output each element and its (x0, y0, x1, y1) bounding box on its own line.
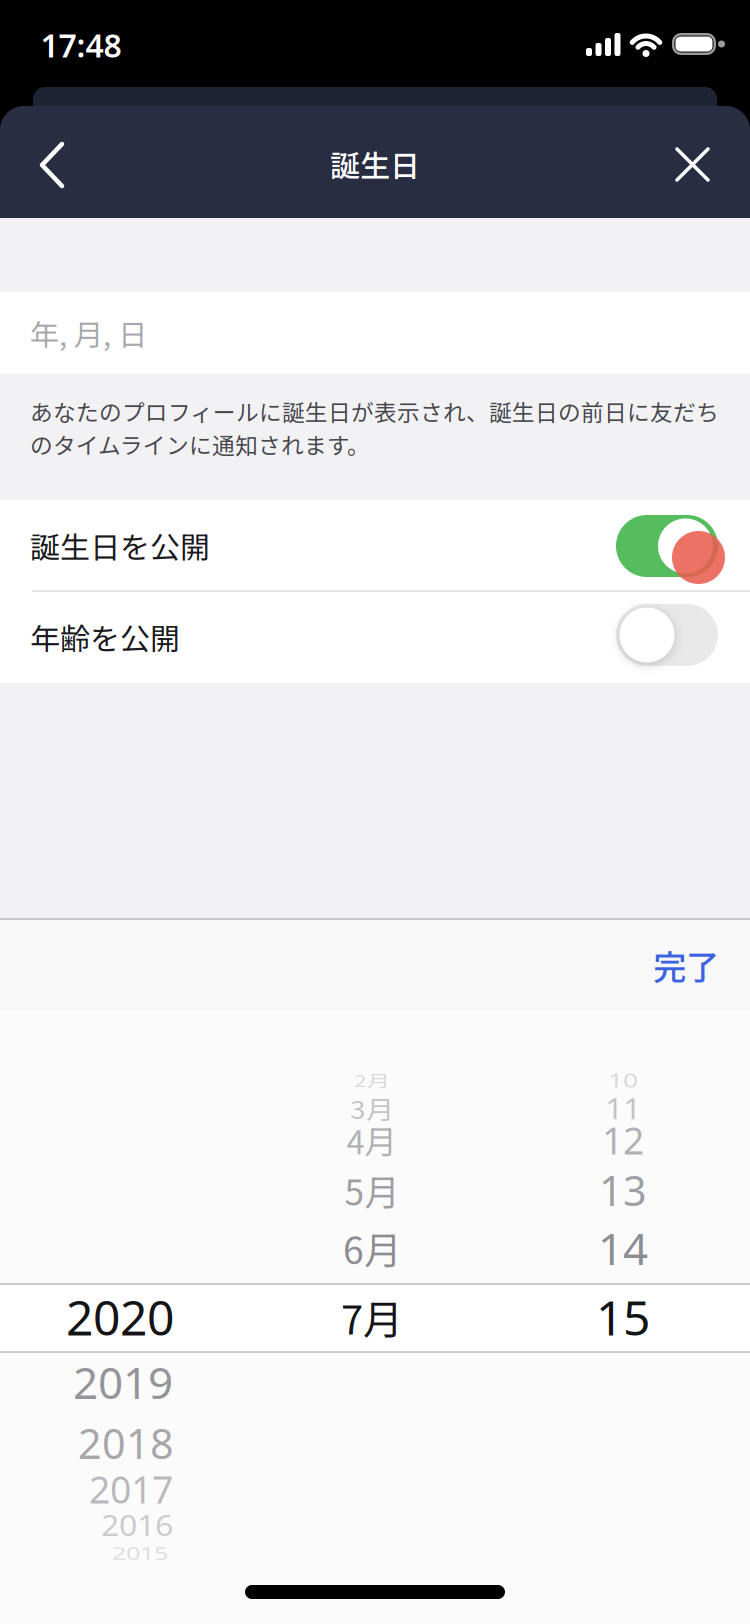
staticText: 2020 (66, 1285, 174, 1349)
staticText: 10 (608, 1062, 638, 1098)
staticText: 14 (598, 1219, 648, 1277)
staticText: 17:48 (40, 24, 121, 66)
staticText: 2015 (112, 1536, 168, 1570)
staticText: 11 (605, 1087, 641, 1129)
button[interactable]: Back (12, 125, 92, 205)
staticText: 2月 (354, 1064, 390, 1096)
staticText: 2017 (89, 1464, 173, 1514)
staticText: 2018 (78, 1416, 174, 1470)
staticText: 4月 (346, 1116, 397, 1164)
button[interactable]: Close (652, 124, 732, 204)
staticText: 6月 (343, 1221, 401, 1275)
staticText: 年齢を公開 (30, 615, 180, 659)
staticText: あなたのプロフィールに誕生日が表示され、誕生日の前日に友だち (30, 395, 719, 427)
staticText: 2019 (73, 1353, 173, 1411)
staticText: 2016 (101, 1504, 173, 1546)
button[interactable]: 完了 (616, 920, 750, 1010)
staticText: 5月 (344, 1164, 399, 1216)
staticText: のタイムラインに通知されます。 (30, 428, 370, 460)
staticText: 12 (602, 1115, 644, 1165)
staticText: 15 (596, 1285, 650, 1349)
staticText: 3月 (350, 1088, 394, 1128)
staticText: 誕生日を公開 (30, 524, 210, 567)
button[interactable]: 年齢を公開 (0, 592, 750, 682)
staticText: 13 (599, 1163, 647, 1217)
staticText: 完了 (653, 941, 719, 989)
staticText: 誕生日 (330, 142, 420, 186)
staticText: 7月 (341, 1288, 403, 1346)
button[interactable]: 誕生日を公開 (0, 501, 750, 597)
button[interactable]: 年, 月, 日 (0, 292, 750, 374)
staticText: 年, 月, 日 (30, 312, 147, 354)
